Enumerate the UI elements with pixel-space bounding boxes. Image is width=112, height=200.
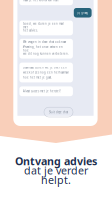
- staticText: We vragen in deze chat ook naar je: [23, 40, 66, 47]
- button[interactable]: Sluit deze chat: [44, 107, 73, 117]
- staticText: week of zes nog een herhaalmail: [23, 71, 69, 74]
- staticText: helpt.: [41, 173, 71, 187]
- staticText: Daarnaast sturen we je over een: [23, 66, 67, 69]
- staticText: Sluit deze chat: [49, 110, 68, 114]
- staticText: dat je verder: [24, 163, 88, 178]
- staticText: hoe het met je gaat.: [23, 76, 52, 79]
- staticText: ervaring, het onze artsen en hoe: [23, 45, 63, 52]
- staticText: Ontvang advies: [15, 154, 97, 168]
- staticText: we dit nog kunnen verbeteren.: [23, 52, 69, 55]
- staticText: het advies.: [23, 29, 38, 32]
- staticText: maar je het vooral van had?: [23, 0, 59, 2]
- staticText: Goed, we sturen je een mail met: [23, 22, 64, 29]
- staticText: Alvast succes met je herstel!: [23, 89, 61, 93]
- staticText: Ja, graag: [77, 11, 88, 14]
